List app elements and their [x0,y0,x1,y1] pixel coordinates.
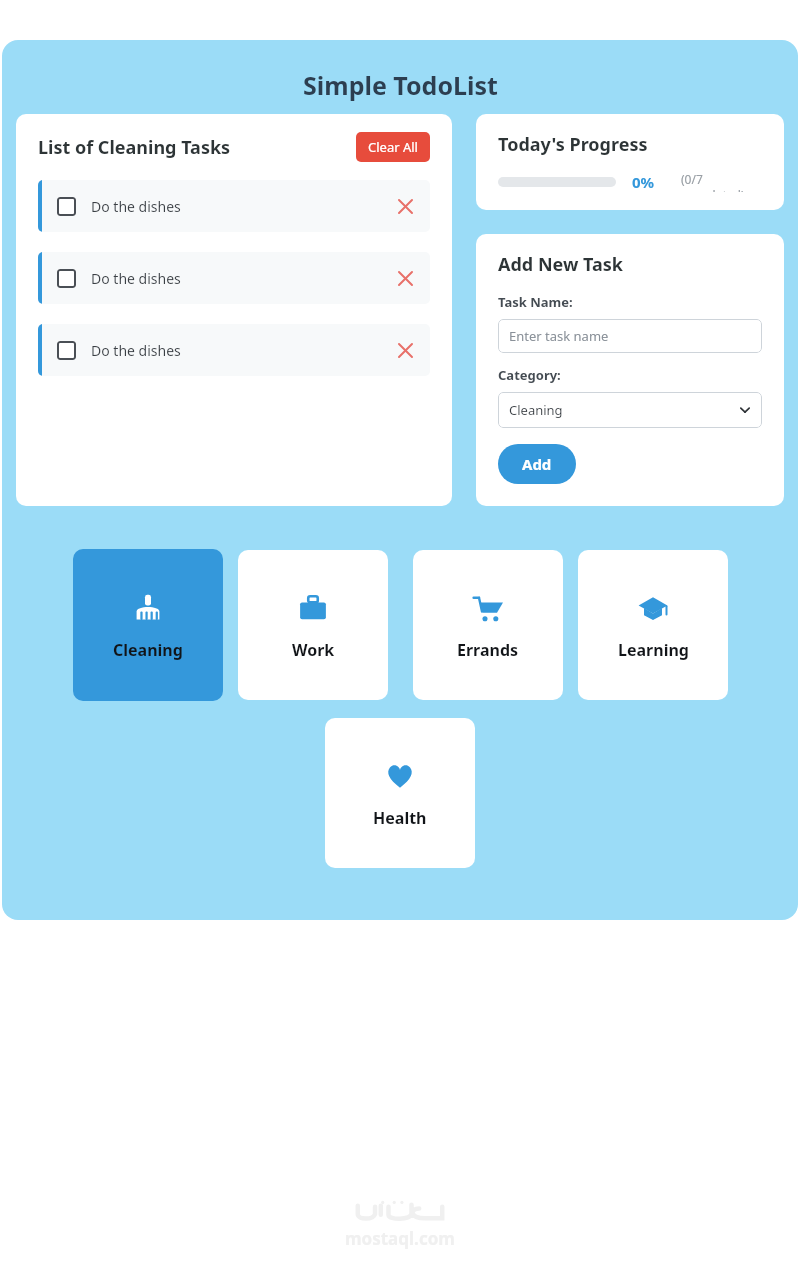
button[interactable]: Learning [578,550,728,700]
staticText: mostaql.com [345,1227,455,1250]
button[interactable]: Health [325,718,475,868]
staticText: Today's Progress [498,132,648,157]
button[interactable]: Add [498,444,576,484]
button[interactable]: Toggle task complete [38,180,430,232]
staticText: Health [373,807,427,829]
button[interactable]: Toggle task complete [57,197,76,216]
staticText: Cleaning [113,639,183,661]
button[interactable]: Toggle task complete [38,252,430,304]
staticText: 0% [632,172,655,192]
staticText: Do the dishes [91,341,181,360]
staticText: Do the dishes [91,269,181,288]
staticText: Enter task name [509,327,609,345]
staticText: Add New Task [498,252,623,277]
button[interactable]: Toggle task complete [57,269,76,288]
staticText: Do the dishes [91,197,181,216]
staticText: Category: [498,366,561,384]
staticText: Clear All [368,138,418,156]
staticText: List of Cleaning Tasks [38,135,231,160]
staticText: Work [292,639,335,661]
button[interactable]: Errands [413,550,563,700]
staticText: Cleaning [509,401,563,419]
button[interactable]: Delete task [390,191,420,221]
button[interactable]: Delete task [390,335,420,365]
staticText: (0/7 completed) [681,171,762,192]
button[interactable]: Work [238,550,388,700]
staticText: Add [522,454,552,474]
staticText: Task Name: [498,293,573,311]
button[interactable]: Enter task name [498,319,762,353]
button[interactable]: Cleaning [498,392,762,428]
button[interactable]: Delete task [390,263,420,293]
staticText: Simple TodoList [303,68,498,102]
button[interactable]: Clear All [356,132,430,162]
button[interactable]: Toggle task complete [38,324,430,376]
staticText: Learning [618,639,689,661]
staticText: Errands [457,639,519,661]
button[interactable]: Toggle task complete [57,341,76,360]
button[interactable]: Cleaning [73,549,223,701]
